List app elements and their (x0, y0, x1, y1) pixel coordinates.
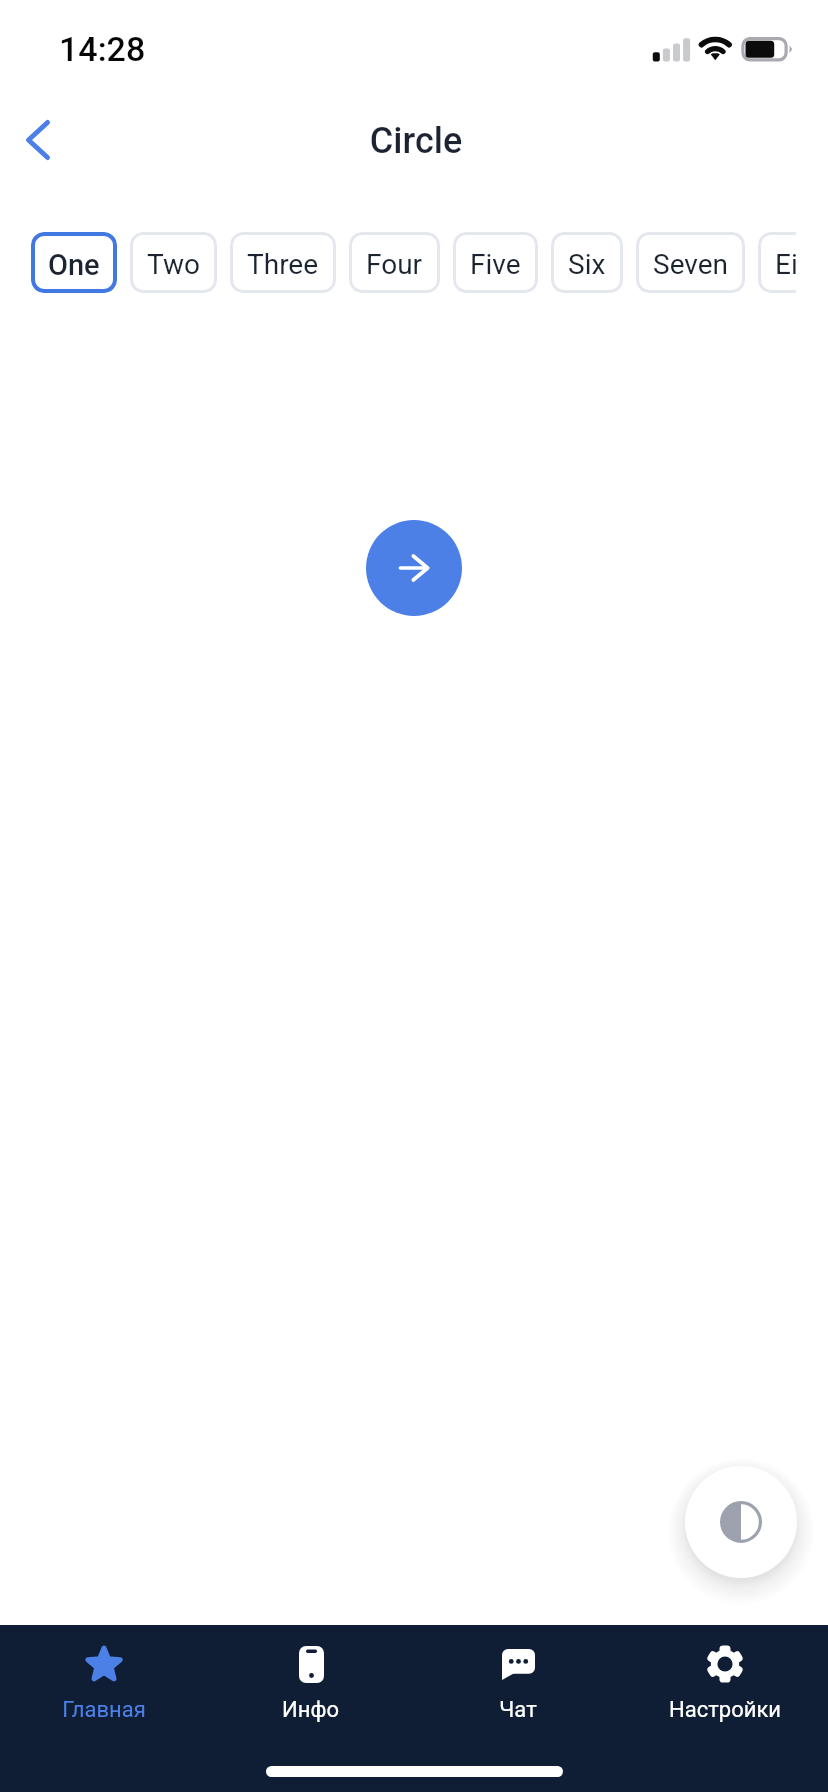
button[interactable]: Back (8, 100, 68, 180)
staticText: One (48, 248, 100, 282)
button[interactable]: Three (230, 232, 336, 293)
button[interactable]: Настройки (621, 1625, 828, 1741)
button[interactable]: Seven (636, 232, 745, 293)
button[interactable]: Toggle theme (685, 1466, 797, 1578)
staticText: 14:28 (59, 29, 146, 69)
staticText: Настройки (669, 1697, 781, 1723)
button[interactable]: Next (366, 520, 462, 616)
button[interactable]: One (31, 232, 117, 293)
staticText: Чат (499, 1697, 537, 1723)
staticText: Seven (653, 248, 728, 281)
staticText: Two (147, 248, 200, 281)
button[interactable]: Five (453, 232, 538, 293)
staticText: Three (247, 248, 319, 281)
button[interactable]: Инфо (207, 1625, 414, 1741)
staticText: Four (366, 248, 423, 281)
staticText: Главная (62, 1697, 146, 1723)
button[interactable]: Чат (414, 1625, 621, 1741)
staticText: Six (568, 248, 606, 281)
button[interactable]: Eight (758, 232, 796, 293)
staticText: Инфо (282, 1697, 339, 1723)
staticText: Five (470, 248, 521, 281)
button[interactable]: Главная (0, 1625, 207, 1741)
staticText: Eight (775, 248, 796, 281)
staticText: Circle (2, 120, 828, 162)
button[interactable]: Six (551, 232, 623, 293)
button[interactable]: Four (349, 232, 440, 293)
button[interactable]: Two (130, 232, 217, 293)
